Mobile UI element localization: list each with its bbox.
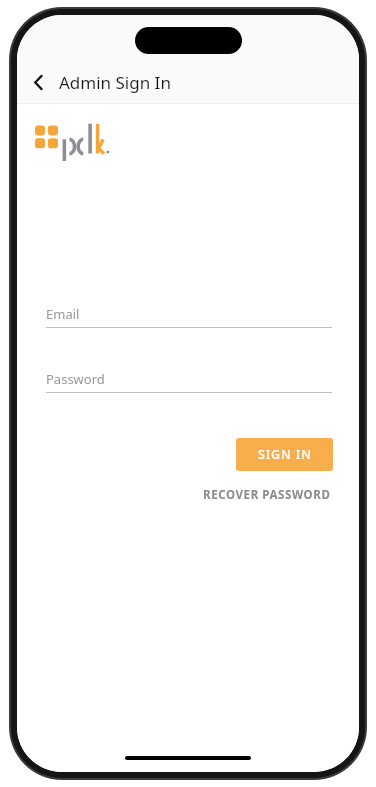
staticText: Admin Sign In bbox=[59, 71, 171, 94]
button[interactable]: Password bbox=[17, 370, 359, 393]
button[interactable]: Email bbox=[17, 305, 359, 328]
staticText: Password bbox=[46, 370, 105, 388]
button[interactable]: RECOVER PASSWORD bbox=[201, 484, 333, 506]
staticText: Email bbox=[46, 305, 80, 323]
staticText: RECOVER PASSWORD bbox=[203, 487, 331, 503]
staticText: SIGN IN bbox=[258, 446, 312, 463]
button[interactable]: SIGN IN bbox=[236, 438, 333, 471]
button[interactable]: Back bbox=[17, 61, 59, 103]
